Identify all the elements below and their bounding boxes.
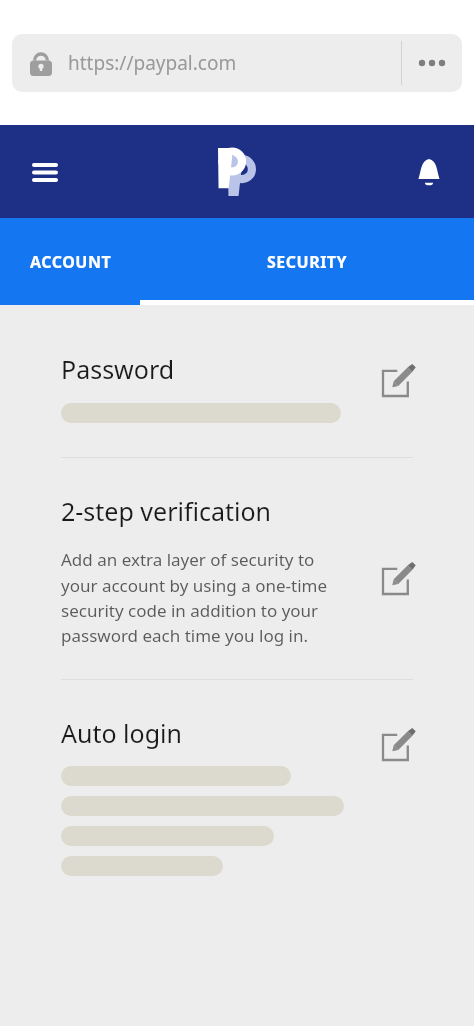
staticText: 2-step verification [61,494,272,528]
button[interactable]: Menu [22,149,68,195]
button[interactable]: SECURITY [140,218,474,305]
button[interactable]: Edit [378,724,418,764]
staticText: Auto login [61,716,182,750]
staticText: SECURITY [267,251,348,273]
button[interactable]: Notifications [406,149,452,195]
staticText: https://paypal.com [68,50,237,76]
button[interactable]: PayPal home [210,145,264,199]
staticText: ACCOUNT [30,251,112,273]
staticText: Add an extra layer of security to your a… [61,548,328,647]
button[interactable]: Edit [378,558,418,598]
button[interactable]: Edit [378,360,418,400]
button[interactable]: https://paypal.com [12,34,462,92]
button[interactable]: ACCOUNT [30,218,112,305]
staticText: Password [61,352,175,386]
button[interactable]: More options [402,34,462,92]
